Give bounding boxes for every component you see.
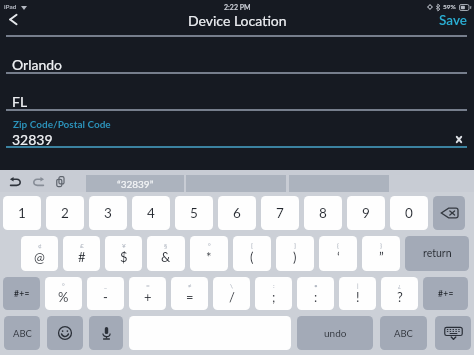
staticText: +: [144, 289, 152, 305]
staticText: undo: [324, 327, 347, 339]
button[interactable]: Clear text: [449, 132, 468, 147]
staticText: :: [273, 282, 275, 290]
staticText: |: [357, 282, 359, 290]
button[interactable]: 4: [132, 196, 170, 230]
button[interactable]: Back: [0, 9, 34, 31]
button[interactable]: 3: [89, 196, 127, 230]
staticText: £: [80, 242, 84, 250]
button[interactable]: }: [362, 236, 400, 271]
staticText: -: [103, 289, 108, 305]
staticText: =: [186, 289, 194, 305]
button[interactable]: 8: [304, 196, 342, 230]
staticText: 59%: [443, 3, 456, 11]
staticText: #: [78, 249, 86, 265]
staticText: 8: [319, 205, 327, 221]
button[interactable]: ABC: [4, 316, 40, 350]
staticText: [: [251, 242, 253, 250]
button[interactable]: ¿: [381, 277, 418, 310]
staticText: ABC: [394, 328, 413, 339]
staticText: Orlando: [12, 56, 63, 73]
button[interactable]: undo: [297, 316, 373, 350]
staticText: 4: [147, 205, 155, 221]
staticText: ≠: [188, 282, 192, 290]
staticText: &: [161, 249, 171, 265]
staticText: _: [104, 282, 107, 290]
staticText: iPad: [4, 3, 17, 11]
staticText: Zip Code/Postal Code: [13, 118, 111, 130]
staticText: #+=: [14, 289, 30, 299]
button[interactable]: •: [297, 277, 334, 310]
button[interactable]: 0: [390, 196, 428, 230]
staticText: 1: [18, 205, 26, 221]
button[interactable]: Dictate: [89, 316, 123, 350]
button[interactable]: 1: [3, 196, 41, 230]
staticText: *: [206, 249, 212, 265]
staticText: 5: [190, 205, 198, 221]
staticText: /: [229, 289, 235, 305]
button[interactable]: 9: [347, 196, 385, 230]
staticText: °: [208, 242, 211, 250]
button[interactable]: £: [63, 236, 100, 271]
button[interactable]: #+=: [3, 277, 40, 310]
button[interactable]: 7: [261, 196, 299, 230]
button[interactable]: ]: [276, 236, 314, 271]
staticText: !: [356, 289, 360, 305]
staticText: ¥: [122, 242, 126, 250]
staticText: =: [146, 282, 150, 290]
button[interactable]: Save: [429, 9, 474, 31]
staticText: $: [120, 249, 128, 265]
button[interactable]: Backspace: [433, 196, 465, 230]
button[interactable]: |: [339, 277, 376, 310]
button[interactable]: 5: [175, 196, 213, 230]
button[interactable]: °: [45, 277, 82, 310]
button[interactable]: #+=: [423, 277, 468, 310]
staticText: :: [314, 289, 318, 305]
staticText: 3: [104, 205, 112, 221]
button[interactable]: ¢: [21, 236, 58, 271]
button[interactable]: 2: [46, 196, 84, 230]
button[interactable]: Redo: [27, 170, 50, 192]
button[interactable]: ABC: [380, 316, 427, 350]
staticText: {: [337, 242, 339, 250]
staticText: ;: [272, 289, 276, 305]
button[interactable]: =: [129, 277, 166, 310]
button[interactable]: Paste: [49, 170, 72, 192]
staticText: 2: [61, 205, 69, 221]
staticText: (: [250, 249, 254, 265]
staticText: ): [293, 249, 297, 265]
button[interactable]: :: [255, 277, 292, 310]
button[interactable]: [: [233, 236, 271, 271]
staticText: 9: [362, 205, 370, 221]
button[interactable]: §: [147, 236, 185, 271]
staticText: “32839”: [117, 178, 154, 190]
staticText: \: [230, 282, 233, 290]
staticText: ¢: [38, 242, 42, 250]
staticText: 32839: [12, 131, 53, 148]
button[interactable]: “32839”: [86, 175, 184, 192]
staticText: •: [314, 282, 318, 290]
staticText: 2:22 PM: [224, 3, 251, 11]
button[interactable]: °: [190, 236, 228, 271]
button[interactable]: Hide keyboard: [435, 316, 471, 350]
button[interactable]: ≠: [171, 277, 208, 310]
staticText: @: [34, 249, 45, 265]
button[interactable]: Undo: [4, 170, 27, 192]
staticText: ABC: [13, 328, 32, 339]
staticText: FL: [12, 93, 28, 110]
button[interactable]: 6: [218, 196, 256, 230]
staticText: °: [62, 282, 65, 290]
staticText: 7: [276, 205, 284, 221]
button[interactable]: _: [87, 277, 124, 310]
button[interactable]: return: [405, 236, 469, 271]
staticText: 0: [405, 205, 413, 221]
staticText: §: [164, 242, 168, 250]
staticText: ‘: [337, 249, 340, 265]
staticText: ]: [294, 242, 296, 250]
button[interactable]: {: [319, 236, 357, 271]
button[interactable]: Emoji: [47, 316, 83, 350]
button[interactable]: \: [213, 277, 250, 310]
button[interactable]: ¥: [105, 236, 142, 271]
